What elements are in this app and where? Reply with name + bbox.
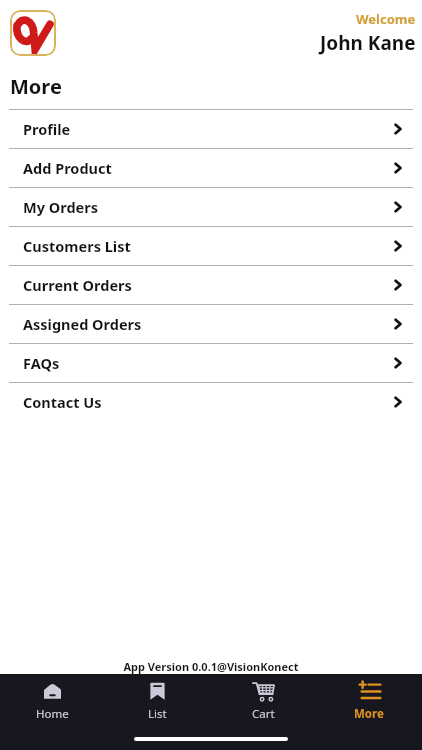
staticText: More bbox=[354, 706, 384, 722]
staticText: More bbox=[10, 73, 62, 100]
staticText: Cart bbox=[252, 706, 275, 722]
button[interactable]: Contact Us bbox=[0, 383, 422, 421]
button[interactable]: Current Orders bbox=[0, 266, 422, 304]
staticText: Current Orders bbox=[23, 275, 132, 295]
button[interactable]: Assigned Orders bbox=[0, 305, 422, 343]
staticText: List bbox=[148, 706, 167, 722]
staticText: My Orders bbox=[23, 197, 98, 217]
staticText: Add Product bbox=[23, 158, 112, 178]
other: App logo bbox=[10, 10, 56, 56]
button[interactable]: Profile bbox=[0, 110, 422, 148]
button[interactable]: My Orders bbox=[0, 188, 422, 226]
staticText: App Version 0.0.1@VisionKonect bbox=[123, 659, 299, 674]
button[interactable]: More bbox=[316, 674, 422, 728]
staticText: FAQs bbox=[23, 353, 60, 373]
staticText: John Kane bbox=[320, 30, 416, 56]
staticText: Customers List bbox=[23, 236, 131, 256]
button[interactable]: FAQs bbox=[0, 344, 422, 382]
staticText: Contact Us bbox=[23, 392, 102, 412]
staticText: Home bbox=[36, 706, 69, 722]
staticText: Assigned Orders bbox=[23, 314, 142, 334]
button[interactable]: Add Product bbox=[0, 149, 422, 187]
staticText: Welcome bbox=[356, 10, 416, 28]
staticText: Profile bbox=[23, 119, 71, 139]
button[interactable]: Cart bbox=[210, 674, 316, 728]
button[interactable]: List bbox=[105, 674, 210, 728]
button[interactable]: Home bbox=[0, 674, 105, 728]
button[interactable]: Customers List bbox=[0, 227, 422, 265]
